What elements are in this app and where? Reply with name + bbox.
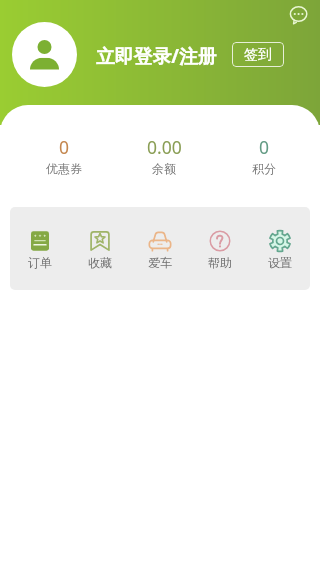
button[interactable]: Avatar <box>12 22 77 87</box>
staticText: 设置 <box>268 255 292 270</box>
staticText: 帮助 <box>208 255 232 270</box>
button[interactable]: 0 <box>214 135 314 176</box>
staticText: 0 <box>59 135 70 159</box>
button[interactable]: 帮助 <box>190 207 250 290</box>
button[interactable]: 收藏 <box>70 207 130 290</box>
button[interactable]: 0.00 <box>114 135 214 176</box>
staticText: 立即登录/注册 <box>96 43 217 69</box>
button[interactable]: 签到 <box>232 42 284 67</box>
staticText: 0.00 <box>147 135 182 159</box>
staticText: 订单 <box>28 255 52 270</box>
button[interactable]: Messages <box>288 4 308 24</box>
staticText: 签到 <box>244 46 272 64</box>
staticText: 余额 <box>152 161 176 176</box>
button[interactable]: 爱车 <box>130 207 190 290</box>
staticText: 优惠券 <box>46 161 82 176</box>
staticText: 积分 <box>252 161 276 176</box>
button[interactable]: 0 <box>14 135 114 176</box>
button[interactable]: 设置 <box>250 207 310 290</box>
button[interactable]: 立即登录/注册 <box>96 43 217 69</box>
staticText: 收藏 <box>88 255 112 270</box>
staticText: 0 <box>259 135 270 159</box>
staticText: 爱车 <box>148 255 172 270</box>
button[interactable]: 订单 <box>10 207 70 290</box>
